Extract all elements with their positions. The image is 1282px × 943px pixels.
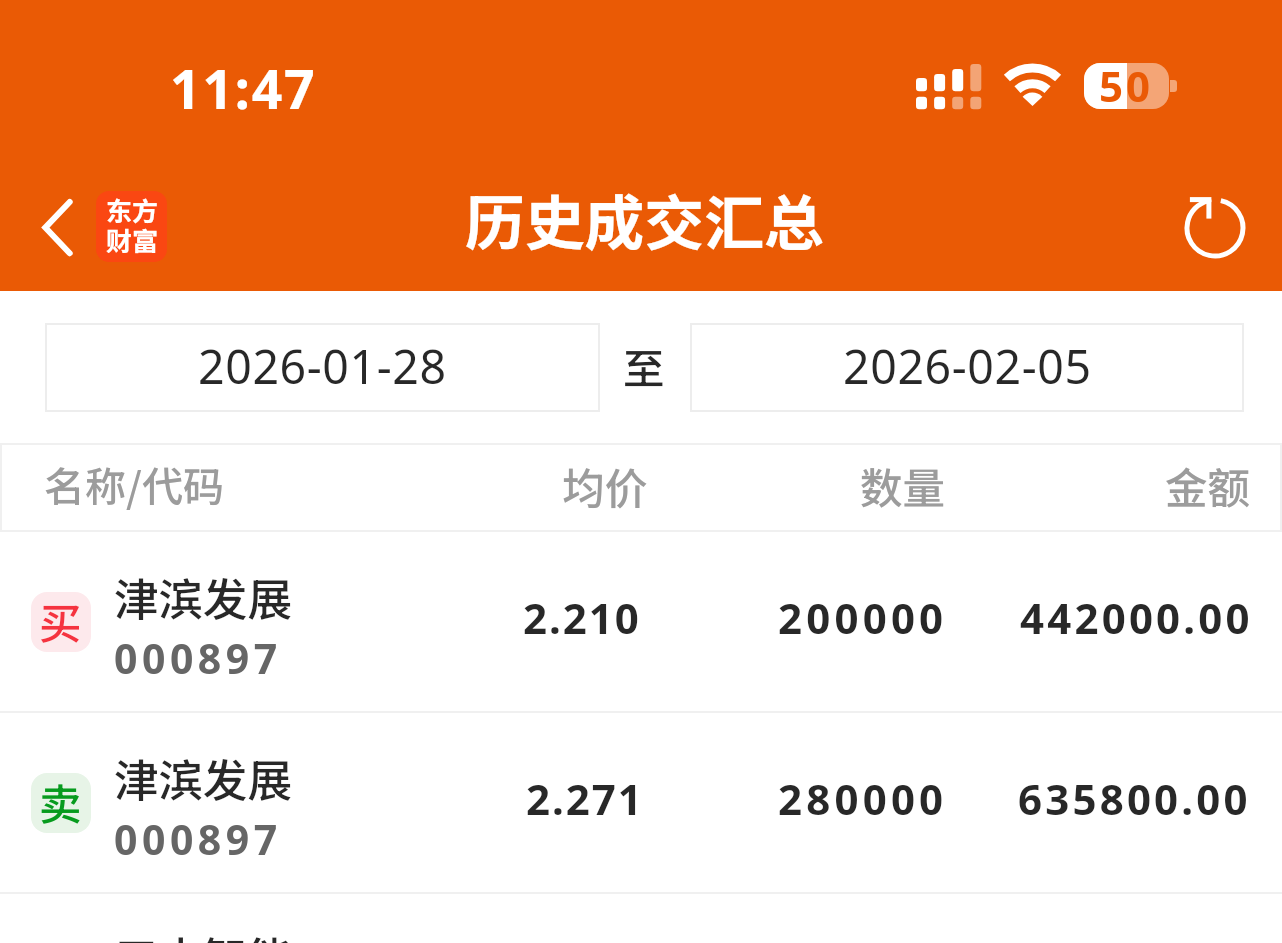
- staticText: 200000: [778, 589, 948, 646]
- staticText: 000897: [114, 630, 282, 686]
- staticText: 2.210: [523, 589, 641, 646]
- button[interactable]: [0, 892, 1282, 943]
- staticText: 财富: [106, 221, 159, 259]
- button[interactable]: [0, 532, 1282, 713]
- staticText: 买: [39, 590, 82, 652]
- staticText: 至: [623, 336, 665, 396]
- staticText: 三丰智能: [114, 923, 293, 943]
- button[interactable]: [45, 323, 600, 412]
- button[interactable]: Refresh: [1170, 183, 1260, 273]
- staticText: 2026-02-05: [843, 334, 1092, 397]
- staticText: 11:47: [170, 52, 317, 125]
- staticText: 635800.00: [1018, 770, 1251, 827]
- staticText: 2.271: [526, 770, 644, 827]
- staticText: 津滨发展: [114, 564, 293, 628]
- staticText: 2026-01-28: [198, 334, 447, 397]
- staticText: 均价: [562, 455, 648, 517]
- staticText: 金额: [1165, 455, 1251, 517]
- staticText: 数量: [860, 455, 946, 517]
- staticText: 历史成交汇总: [465, 176, 824, 263]
- button[interactable]: [690, 323, 1244, 412]
- staticText: 000897: [114, 811, 282, 867]
- staticText: 名称/代码: [44, 454, 224, 513]
- staticText: 50: [1099, 57, 1154, 114]
- staticText: 卖: [39, 771, 82, 833]
- button[interactable]: [0, 713, 1282, 894]
- staticText: 280000: [778, 770, 948, 827]
- button[interactable]: Back: [20, 186, 100, 266]
- staticText: 442000.00: [1020, 589, 1253, 646]
- staticText: 津滨发展: [114, 745, 293, 809]
- staticText: 东方: [106, 191, 159, 229]
